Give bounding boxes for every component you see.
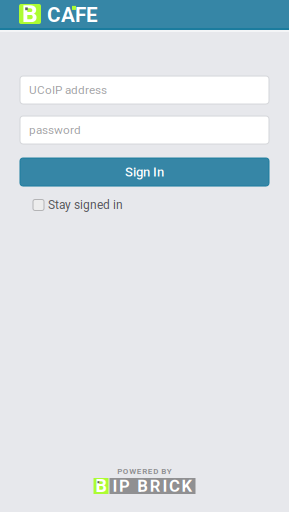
staticText: Stay signed in <box>48 198 123 212</box>
staticText: B <box>95 476 106 496</box>
button[interactable]: Sign In <box>20 158 269 186</box>
button[interactable]: Stay signed in <box>33 198 269 212</box>
staticText: UCoIP address <box>29 83 107 97</box>
staticText: POWERED BY <box>117 467 172 476</box>
staticText: IP BRICK <box>112 476 193 496</box>
staticText: password <box>29 123 81 137</box>
staticText: B <box>22 0 38 28</box>
staticText: CAFE <box>47 3 98 27</box>
staticText: Sign In <box>125 164 164 180</box>
